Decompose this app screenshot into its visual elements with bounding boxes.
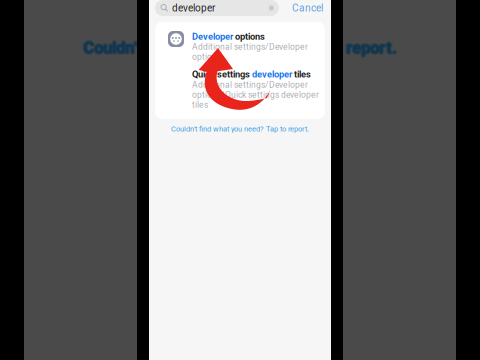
staticText: Couldn't find what you need? Tap to repo…	[171, 124, 309, 133]
button[interactable]: Developer options	[155, 22, 325, 62]
staticText: Additional settings/Developer options	[192, 42, 308, 62]
button[interactable]: Cancel	[290, 2, 325, 14]
staticText: Couldn't find what you need? Tap to repo…	[82, 39, 396, 58]
staticText: Cancel	[292, 2, 323, 14]
staticText: Additional settings/Developer options/Qu…	[192, 80, 319, 110]
staticText: Couldn't find what you need? Tap to repo…	[83, 39, 397, 59]
staticText: Couldn't find what you need? Tap to repo…	[82, 37, 396, 56]
button[interactable]: developer	[155, 0, 279, 16]
staticText: Couldn't find what you need? Tap to repo…	[83, 38, 397, 57]
staticText: developer	[172, 2, 215, 14]
button[interactable]: Couldn't find what you need? Tap to repo…	[149, 119, 331, 139]
button[interactable]: Quick settings developer tiles	[155, 62, 325, 119]
staticText: Couldn't find what you need? Tap to repo…	[83, 37, 397, 56]
staticText: Couldn't find what you need? Tap to repo…	[84, 37, 398, 56]
staticText: Couldn't find what you need? Tap to repo…	[84, 38, 398, 57]
staticText: Developer options	[192, 31, 265, 42]
staticText: Couldn't find what you need? Tap to repo…	[82, 38, 396, 57]
staticText: Couldn't find what you need? Tap to repo…	[84, 39, 398, 58]
staticText: Quick settings developer tiles	[192, 69, 311, 80]
